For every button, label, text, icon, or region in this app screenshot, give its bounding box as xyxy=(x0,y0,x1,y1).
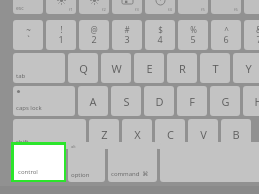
button[interactable]: control xyxy=(11,142,66,182)
button[interactable]: caps lock xyxy=(13,86,75,116)
button[interactable]: C xyxy=(155,119,185,149)
button[interactable]: Function key 4 xyxy=(112,0,142,14)
staticText: # xyxy=(124,24,130,35)
button[interactable]: ^ xyxy=(211,20,241,50)
staticText: @ xyxy=(90,24,98,35)
staticText: T xyxy=(212,61,219,76)
staticText: 6 xyxy=(223,33,229,45)
staticText: 7 xyxy=(256,33,259,45)
staticText: ^ xyxy=(224,24,229,35)
button[interactable]: Function key 1 xyxy=(13,0,43,14)
staticText: X xyxy=(134,127,141,142)
button[interactable]: V xyxy=(188,119,218,149)
staticText: f6 xyxy=(234,7,238,12)
button[interactable]: T xyxy=(200,53,230,83)
button[interactable]: F xyxy=(177,86,207,116)
button[interactable]: # xyxy=(112,20,142,50)
staticText: f3 xyxy=(135,7,139,12)
staticText: A xyxy=(89,94,97,109)
button[interactable]: W xyxy=(101,53,131,83)
staticText: 3 xyxy=(124,33,130,45)
staticText: ` xyxy=(27,33,30,45)
staticText: option xyxy=(71,171,90,179)
staticText: command ⌘ xyxy=(111,170,149,178)
button[interactable]: ! xyxy=(46,20,76,50)
button[interactable]: Q xyxy=(68,53,98,83)
button[interactable]: $ xyxy=(145,20,175,50)
staticText: caps lock xyxy=(16,104,42,112)
button[interactable]: % xyxy=(178,20,208,50)
button[interactable]: E xyxy=(134,53,164,83)
button[interactable]: Function key 7 xyxy=(211,0,241,14)
button[interactable]: ~ xyxy=(13,20,43,50)
button[interactable]: alt xyxy=(68,142,105,182)
button[interactable]: & xyxy=(244,20,259,50)
staticText: B xyxy=(232,127,240,142)
button[interactable]: command ⌘ xyxy=(108,142,157,182)
button[interactable]: A xyxy=(78,86,108,116)
staticText: & xyxy=(256,24,259,35)
button[interactable]: Function key 2 xyxy=(46,0,76,14)
button[interactable]: S xyxy=(111,86,141,116)
staticText: f5 xyxy=(201,7,205,12)
button[interactable]: Z xyxy=(89,119,119,149)
staticText: F xyxy=(189,94,195,109)
staticText: 2 xyxy=(91,33,97,45)
staticText: control xyxy=(18,168,38,176)
button[interactable]: shift xyxy=(13,119,86,149)
button[interactable]: Function key 8 xyxy=(244,0,259,14)
button[interactable]: X xyxy=(122,119,152,149)
staticText: f2 xyxy=(102,7,106,12)
staticText: ! xyxy=(60,24,63,35)
staticText: 1 xyxy=(58,33,64,45)
staticText: tab xyxy=(16,72,26,80)
staticText: $ xyxy=(158,24,163,35)
staticText: f1 xyxy=(69,7,73,12)
button[interactable]: Function key 5 xyxy=(145,0,175,14)
button[interactable]: Function key 3 xyxy=(79,0,109,14)
button[interactable]: tab xyxy=(13,53,65,83)
staticText: Z xyxy=(101,127,108,142)
staticText: G xyxy=(221,94,230,109)
staticText: V xyxy=(200,127,207,142)
staticText: esc xyxy=(16,5,24,12)
button[interactable]: B xyxy=(221,119,251,149)
staticText: Y xyxy=(245,61,252,76)
staticText: ~ xyxy=(26,24,31,35)
button[interactable]: Function key 6 xyxy=(178,0,208,14)
button[interactable]: Y xyxy=(233,53,259,83)
button[interactable]: D xyxy=(144,86,174,116)
staticText: Q xyxy=(79,61,88,76)
staticText: shift xyxy=(16,138,29,146)
staticText: E xyxy=(146,61,153,76)
staticText: 4 xyxy=(157,33,163,45)
button[interactable]: H xyxy=(243,86,259,116)
staticText: R xyxy=(179,61,186,76)
button[interactable]: G xyxy=(210,86,240,116)
staticText: S xyxy=(123,94,130,109)
staticText: f4 xyxy=(168,7,172,12)
button[interactable]: R xyxy=(167,53,197,83)
staticText: C xyxy=(167,127,174,142)
staticText: D xyxy=(155,94,164,109)
staticText: alt xyxy=(71,144,76,149)
staticText: W xyxy=(111,61,122,76)
staticText: H xyxy=(254,94,259,109)
staticText: % xyxy=(190,24,197,35)
staticText: 5 xyxy=(190,33,196,45)
button[interactable]: @ xyxy=(79,20,109,50)
